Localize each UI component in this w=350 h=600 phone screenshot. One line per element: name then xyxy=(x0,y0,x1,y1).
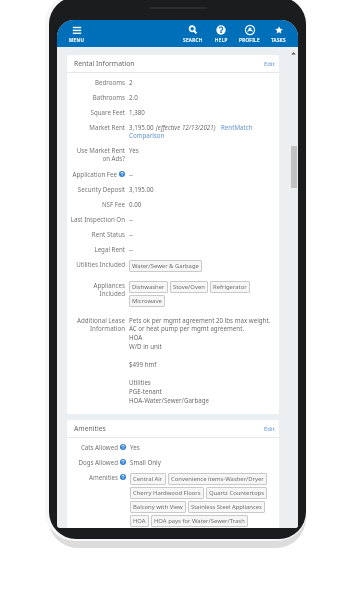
other: Search xyxy=(188,25,198,35)
staticText: -- xyxy=(129,245,133,253)
staticText: Security Deposit xyxy=(77,185,125,193)
staticText: (effective 12/13/2021) xyxy=(156,123,216,131)
staticText: TASKS xyxy=(271,37,286,43)
staticText: Stove/Oven xyxy=(173,283,205,291)
staticText: SEARCH xyxy=(183,37,203,43)
staticText: Market Rent xyxy=(89,123,125,131)
staticText: Appliances Included xyxy=(93,281,125,298)
staticText: -- xyxy=(129,170,133,178)
staticText: Amenities xyxy=(89,473,118,481)
staticText: Rent Status xyxy=(91,230,125,238)
staticText: 1,380 xyxy=(129,108,145,116)
staticText: Bathrooms xyxy=(92,93,125,101)
staticText: Cats Allowed xyxy=(80,443,118,451)
staticText: Utilities Included xyxy=(76,260,125,268)
staticText: Cherry Hardwood Floors xyxy=(133,489,201,497)
staticText: Legal Rent xyxy=(94,245,125,253)
staticText: -- xyxy=(129,215,133,223)
staticText: Quartz Countertops xyxy=(209,489,264,497)
button[interactable]: Edit xyxy=(263,423,276,435)
staticText: Small Only xyxy=(130,458,161,466)
staticText: PROFILE xyxy=(239,37,260,43)
staticText: Square Feet xyxy=(90,108,125,116)
staticText: Dogs Allowed xyxy=(78,458,118,466)
staticText: Microwave xyxy=(132,297,162,305)
staticText: Edit xyxy=(264,425,275,433)
staticText: 3,195.00 xyxy=(129,185,154,193)
staticText: Last Inspection On xyxy=(70,215,125,223)
staticText: Additional Lease Information xyxy=(77,316,125,333)
staticText: MENU xyxy=(69,37,85,43)
other: Menu xyxy=(72,25,82,35)
staticText: Bedrooms xyxy=(95,78,125,86)
button[interactable]: Tasks xyxy=(264,23,293,45)
staticText: Refrigerator xyxy=(213,283,247,291)
button[interactable]: Search xyxy=(178,23,207,45)
button[interactable]: Menu xyxy=(66,23,88,45)
staticText: Use Market Rent on Ads? xyxy=(76,146,125,163)
staticText: Application Fee xyxy=(72,170,117,178)
staticText: -- xyxy=(129,230,133,238)
staticText: 2.0 xyxy=(129,93,138,101)
staticText: Yes xyxy=(130,443,140,451)
button[interactable]: Profile xyxy=(235,23,264,45)
staticText: Yes xyxy=(129,146,139,154)
staticText: Pets ok per mgmt agreement 20 lbs max we… xyxy=(129,316,271,405)
staticText: 0.00 xyxy=(129,200,142,208)
staticText: Amenities xyxy=(74,424,106,433)
other: Tasks xyxy=(274,25,284,35)
staticText: 2 xyxy=(129,78,133,86)
staticText: HOA pays for Water/Sewer/Trash xyxy=(154,517,245,525)
staticText: Central Air xyxy=(133,475,163,483)
staticText: HELP xyxy=(215,37,228,43)
staticText: Water/Sewer & Garbage xyxy=(132,262,199,270)
staticText: Edit xyxy=(264,60,275,68)
staticText: Convenience items-Washer/Dryer xyxy=(171,475,264,483)
button[interactable]: Help xyxy=(207,23,235,45)
staticText: Stainless Steel Appliances xyxy=(191,503,262,511)
staticText: Dishwasher xyxy=(132,283,165,291)
staticText: HOA xyxy=(133,517,146,525)
staticText: Rental Information xyxy=(74,59,135,68)
button[interactable]: Edit xyxy=(263,58,276,70)
other: Help xyxy=(216,25,226,35)
staticText: NSF Fee xyxy=(101,200,125,208)
staticText: Balcony with View xyxy=(133,503,183,511)
staticText: Comparison xyxy=(129,131,165,139)
staticText: RentMatch xyxy=(221,123,253,131)
other: Profile xyxy=(245,25,255,35)
staticText: 3,195.00 xyxy=(129,123,156,131)
